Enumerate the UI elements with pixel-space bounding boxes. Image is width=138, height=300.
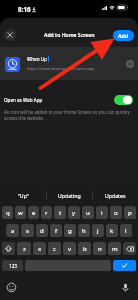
button[interactable]: Go	[113, 260, 136, 271]
button[interactable]: p	[124, 206, 136, 219]
button[interactable]: Backspace	[123, 242, 136, 255]
button[interactable]: s	[21, 224, 34, 237]
staticText: a	[11, 227, 15, 235]
staticText: m	[112, 245, 118, 253]
button[interactable]: d	[36, 224, 48, 237]
staticText: “Up”	[18, 192, 29, 199]
button[interactable]: a	[6, 224, 19, 237]
staticText: p	[128, 209, 132, 217]
staticText: When Up	[27, 56, 47, 62]
staticText: h	[82, 227, 86, 235]
staticText: l	[125, 227, 127, 235]
button[interactable]: w	[15, 206, 26, 219]
staticText: 123	[9, 263, 17, 269]
staticText: f	[55, 227, 58, 235]
button[interactable]: 123	[2, 260, 23, 271]
staticText: An icon will be added to your Home Scree…	[4, 109, 131, 121]
button[interactable]: b	[78, 242, 91, 255]
button[interactable]: g	[64, 224, 76, 237]
button[interactable]: i	[96, 206, 108, 219]
button[interactable]: j	[92, 224, 104, 237]
button[interactable]: r	[41, 206, 52, 219]
button[interactable]: Open as Web App	[4, 94, 133, 105]
button[interactable]: o	[110, 206, 122, 219]
button[interactable]: Emoji	[6, 282, 17, 293]
button[interactable]: Add	[113, 30, 134, 41]
staticText: Add	[118, 32, 129, 39]
staticText: e	[32, 209, 36, 217]
button[interactable]: n	[93, 242, 106, 255]
staticText: y	[72, 209, 76, 217]
button[interactable]: Clear text	[126, 60, 134, 68]
button[interactable]: m	[108, 242, 121, 255]
staticText: v	[68, 245, 72, 253]
staticText: o	[114, 209, 118, 217]
staticText: Updating	[58, 192, 81, 199]
button[interactable]: z	[17, 242, 31, 255]
staticText: Add to Home Screen	[44, 32, 95, 39]
button[interactable]: Close	[4, 29, 16, 41]
staticText: z	[23, 245, 26, 253]
staticText: Updates	[105, 192, 126, 199]
button[interactable]: “Up”	[0, 187, 46, 204]
staticText: n	[98, 245, 102, 253]
button[interactable]: v	[63, 242, 76, 255]
button[interactable]: Updates	[93, 187, 138, 204]
staticText: j	[97, 227, 99, 235]
button[interactable]: x	[33, 242, 46, 255]
button[interactable]: y	[68, 206, 80, 219]
staticText: k	[110, 227, 114, 235]
staticText: 8:16	[18, 5, 31, 14]
button[interactable]: q	[2, 206, 13, 219]
button[interactable]: Shift	[2, 242, 15, 255]
staticText: x	[38, 245, 42, 253]
button[interactable]: k	[106, 224, 118, 237]
staticText: https://www.whenup.com/whenapp	[27, 66, 95, 71]
button[interactable]: h	[78, 224, 90, 237]
button[interactable]: Updating	[47, 187, 92, 204]
staticText: t	[59, 209, 62, 217]
staticText: u	[86, 209, 90, 217]
staticText: b	[83, 245, 87, 253]
staticText: g	[68, 227, 72, 235]
staticText: q	[6, 209, 10, 217]
staticText: s	[26, 227, 29, 235]
staticText: c	[53, 245, 56, 253]
staticText: Open as Web App	[4, 97, 114, 103]
button[interactable]: Dictation	[120, 282, 131, 293]
staticText: r	[45, 209, 48, 217]
button[interactable]: f	[50, 224, 62, 237]
button[interactable]: t	[54, 206, 66, 219]
button[interactable]: c	[48, 242, 61, 255]
staticText: i	[101, 209, 103, 217]
staticText: d	[40, 227, 44, 235]
staticText: w	[18, 209, 23, 217]
button[interactable]: e	[28, 206, 39, 219]
button[interactable]: u	[82, 206, 94, 219]
button[interactable]: l	[120, 224, 132, 237]
